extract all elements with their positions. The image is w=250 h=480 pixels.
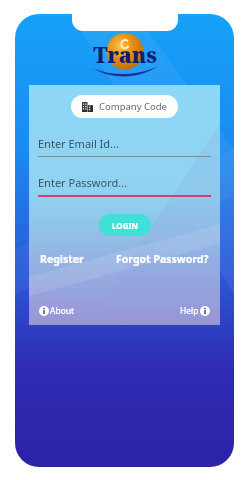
button[interactable]: Information xyxy=(39,305,75,317)
staticText: LOGIN xyxy=(112,220,139,231)
button[interactable]: Register xyxy=(39,250,85,268)
button[interactable]: Enter Password... xyxy=(38,175,211,197)
button[interactable]: Help xyxy=(180,305,210,317)
staticText: Enter Password... xyxy=(38,175,128,190)
staticText: Register xyxy=(40,252,84,266)
other: Information xyxy=(200,306,210,316)
staticText: Trans xyxy=(93,41,157,70)
other: Company xyxy=(82,101,93,112)
staticText: Help xyxy=(180,305,199,317)
button[interactable]: LOGIN xyxy=(99,214,151,236)
staticText: Forgot Password? xyxy=(116,252,209,266)
button[interactable]: Company xyxy=(71,95,178,118)
button[interactable]: Forgot Password? xyxy=(115,250,210,268)
staticText: Enter Email Id... xyxy=(38,136,119,151)
staticText: About xyxy=(50,305,75,317)
button[interactable]: Enter Email Id... xyxy=(38,136,211,157)
other: Information xyxy=(39,306,49,316)
staticText: Company Code xyxy=(99,100,167,113)
